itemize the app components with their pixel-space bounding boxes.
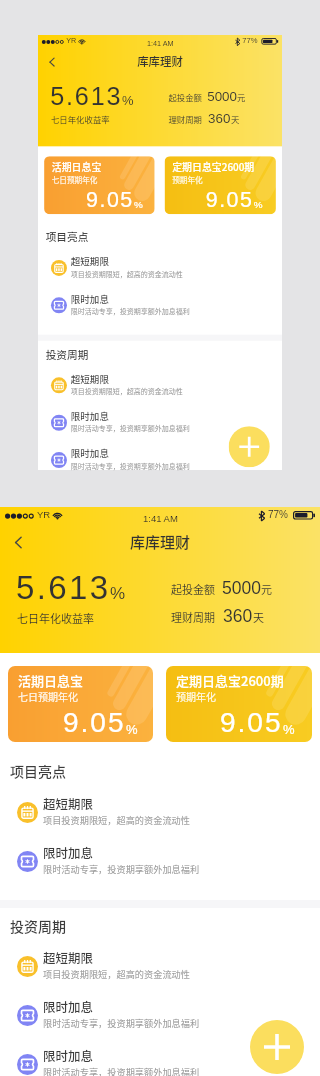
staticText: 限时活动专享，投资期享额外加息福利 xyxy=(43,1065,200,1076)
staticText: 9.05 xyxy=(86,187,134,211)
staticText: 预期年化 xyxy=(172,174,203,184)
staticText: YR xyxy=(66,36,77,45)
button[interactable]: 超短期限 xyxy=(0,789,320,835)
staticText: 项目亮点 xyxy=(46,229,88,244)
staticText: 限时加息 xyxy=(71,409,110,422)
button[interactable]: Back xyxy=(38,52,65,72)
staticText: 项目投资期限短，超高的资金流动性 xyxy=(43,813,190,826)
staticText: 限时活动专享，投资期享额外加息福利 xyxy=(43,862,200,875)
staticText: 起投金额 xyxy=(171,581,215,597)
staticText: 七日预期年化 xyxy=(18,689,78,703)
staticText: 1:41 AM xyxy=(143,513,178,524)
button[interactable]: 超短期限 xyxy=(38,367,282,402)
staticText: 项目投资期限短，超高的资金流动性 xyxy=(43,967,190,980)
staticText: 超短期限 xyxy=(43,948,94,966)
staticText: 超短期限 xyxy=(71,371,110,385)
staticText: 天 xyxy=(253,609,264,625)
staticText: 元 xyxy=(237,91,245,104)
staticText: 定期日息宝2600期 xyxy=(172,160,255,174)
staticText: % xyxy=(126,722,138,737)
staticText: 77% xyxy=(268,509,289,520)
staticText: 库库理财 xyxy=(130,531,191,553)
staticText: 元 xyxy=(261,581,272,597)
staticText: 库库理财 xyxy=(137,53,184,70)
button[interactable]: Add xyxy=(229,426,270,467)
staticText: 限时加息 xyxy=(71,291,110,305)
button[interactable]: 定期日息宝2600期 xyxy=(166,666,312,742)
staticText: 77% xyxy=(242,36,258,45)
staticText: 七日预期年化 xyxy=(52,174,97,184)
staticText: 限时加息 xyxy=(43,843,94,861)
staticText: 9.05 xyxy=(63,707,126,738)
staticText: % xyxy=(254,199,263,210)
button[interactable]: Add xyxy=(250,1020,304,1074)
button[interactable]: 限时加息 xyxy=(0,838,320,884)
staticText: 预期年化 xyxy=(176,689,216,703)
staticText: 9.05 xyxy=(220,707,283,738)
button[interactable]: Back xyxy=(0,529,36,555)
button[interactable]: 定期日息宝2600期 xyxy=(165,156,276,214)
staticText: 限时加息 xyxy=(43,1046,94,1064)
button[interactable]: 限时加息 xyxy=(0,992,320,1038)
staticText: 起投金额 xyxy=(168,91,202,104)
staticText: 项目投资期限短，超高的资金流动性 xyxy=(71,268,183,278)
staticText: % xyxy=(110,584,126,603)
staticText: 七日年化收益率 xyxy=(51,113,110,126)
button[interactable]: 限时加息 xyxy=(38,405,282,440)
staticText: 限时活动专享，投资期享额外加息福利 xyxy=(71,423,190,433)
staticText: 360 xyxy=(223,606,253,626)
staticText: 1:41 AM xyxy=(147,40,174,48)
staticText: 5000 xyxy=(222,578,261,598)
staticText: 理财周期 xyxy=(171,609,215,625)
staticText: 360 xyxy=(208,110,231,126)
staticText: 5.613 xyxy=(16,569,111,606)
staticText: 投资周期 xyxy=(46,347,88,362)
button[interactable]: 超短期限 xyxy=(0,943,320,989)
staticText: 定期日息宝2600期 xyxy=(176,671,284,690)
staticText: 限时加息 xyxy=(43,997,94,1015)
staticText: 天 xyxy=(231,113,239,125)
staticText: 七日年化收益率 xyxy=(17,610,94,626)
button[interactable]: 限时加息 xyxy=(38,442,282,477)
staticText: 超短期限 xyxy=(71,254,110,267)
staticText: 限时活动专享，投资期享额外加息福利 xyxy=(71,306,190,316)
staticText: 活期日息宝 xyxy=(52,160,102,174)
staticText: YR xyxy=(37,509,51,520)
staticText: 9.05 xyxy=(206,187,254,211)
staticText: 活期日息宝 xyxy=(18,671,84,690)
staticText: 超短期限 xyxy=(43,794,94,812)
staticText: 5.613 xyxy=(50,82,123,110)
button[interactable]: 活期日息宝 xyxy=(8,666,153,742)
staticText: 限时活动专享，投资期享额外加息福利 xyxy=(71,460,190,470)
staticText: % xyxy=(122,94,134,108)
staticText: 项目亮点 xyxy=(10,761,66,781)
button[interactable]: 超短期限 xyxy=(38,250,282,285)
button[interactable]: 限时加息 xyxy=(38,287,282,322)
staticText: 限时加息 xyxy=(71,446,110,460)
button[interactable]: 限时加息 xyxy=(0,1041,320,1076)
staticText: 项目投资期限短，超高的资金流动性 xyxy=(71,386,183,396)
button[interactable]: 活期日息宝 xyxy=(44,156,155,214)
staticText: 限时活动专享，投资期享额外加息福利 xyxy=(43,1016,200,1029)
staticText: 理财周期 xyxy=(168,113,202,125)
staticText: % xyxy=(134,199,143,210)
staticText: 投资周期 xyxy=(10,916,66,936)
staticText: 5000 xyxy=(207,89,237,104)
staticText: % xyxy=(283,722,295,737)
